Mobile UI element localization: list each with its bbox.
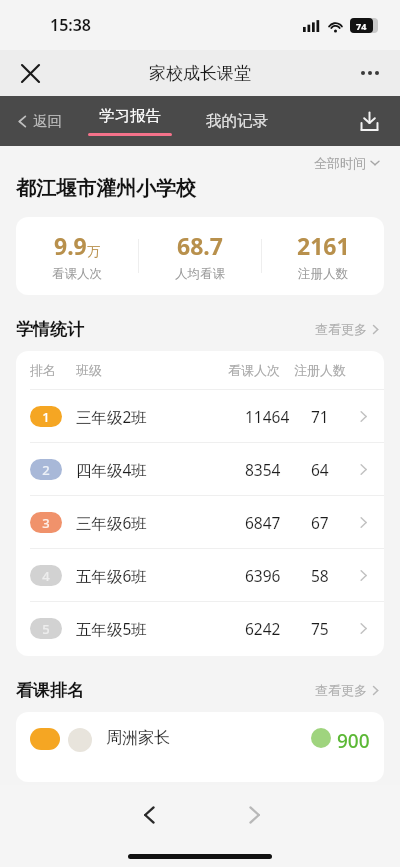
button[interactable]: 全部时间 — [310, 152, 384, 174]
button[interactable]: More options — [348, 51, 392, 95]
button[interactable]: 返回 — [10, 106, 68, 136]
staticText: 返回 — [33, 112, 62, 130]
staticText: 周洲家长 — [106, 728, 170, 748]
button[interactable]: Close — [8, 51, 52, 95]
staticText: 学情统计 — [16, 319, 84, 340]
staticText: 五年级6班 — [76, 565, 245, 586]
staticText: 4 — [42, 567, 50, 585]
staticText: 6847 — [245, 512, 311, 533]
button[interactable]: 我的记录 — [198, 105, 276, 137]
staticText: 看课排名 — [16, 680, 84, 701]
staticText: 5 — [42, 620, 50, 638]
staticText: 人均看课 — [175, 266, 225, 282]
button[interactable]: 2 — [16, 443, 384, 495]
staticText: 15:38 — [50, 14, 92, 36]
staticText: 学习报告 — [99, 106, 161, 126]
staticText: 注册人数 — [294, 362, 356, 378]
staticText: 查看更多 — [315, 682, 367, 698]
staticText: 2 — [42, 461, 50, 479]
staticText: 家校成长课堂 — [149, 63, 251, 84]
staticText: 2161 — [297, 230, 350, 261]
button[interactable]: 5 — [16, 602, 384, 654]
staticText: 五年级5班 — [76, 618, 245, 639]
button[interactable]: Download — [348, 100, 390, 142]
staticText: 8354 — [245, 459, 311, 480]
button[interactable]: 3 — [16, 496, 384, 548]
staticText: 9.9 — [54, 230, 87, 261]
staticText: 四年级4班 — [76, 459, 245, 480]
staticText: 排名 — [30, 362, 76, 378]
staticText: 74 — [356, 20, 367, 32]
staticText: 查看更多 — [315, 321, 367, 337]
staticText: 6396 — [245, 565, 311, 586]
staticText: 3 — [42, 514, 50, 532]
staticText: 1 — [42, 408, 50, 426]
staticText: 67 — [311, 512, 357, 533]
staticText: 68.7 — [177, 230, 223, 261]
button[interactable]: 学习报告 — [80, 106, 180, 136]
staticText: 看课人次 — [52, 266, 102, 282]
staticText: 全部时间 — [314, 155, 366, 171]
staticText: 75 — [311, 618, 357, 639]
button[interactable]: 1 — [16, 390, 384, 442]
staticText: 58 — [311, 565, 357, 586]
staticText: 注册人数 — [298, 266, 348, 282]
button[interactable]: Back — [128, 793, 172, 837]
staticText: 班级 — [76, 362, 228, 378]
button[interactable]: Forward — [232, 793, 276, 837]
staticText: 三年级6班 — [76, 512, 245, 533]
staticText: 看课人次 — [228, 362, 294, 378]
staticText: 三年级2班 — [76, 406, 245, 427]
button[interactable]: 9.9 — [16, 230, 138, 282]
staticText: 6242 — [245, 618, 311, 639]
staticText: 都江堰市灌州小学校 — [16, 176, 196, 201]
staticText: 我的记录 — [206, 111, 268, 131]
staticText: 71 — [311, 406, 357, 427]
button[interactable]: 查看更多 — [312, 317, 384, 341]
staticText: 64 — [311, 459, 357, 480]
button[interactable]: 查看更多 — [312, 678, 384, 702]
button[interactable]: 68.7 — [139, 230, 261, 282]
staticText: 万 — [87, 243, 100, 259]
button[interactable]: 4 — [16, 549, 384, 601]
staticText: 900 — [337, 728, 370, 754]
staticText: 11464 — [245, 406, 311, 427]
button[interactable]: 2161 — [262, 230, 384, 282]
